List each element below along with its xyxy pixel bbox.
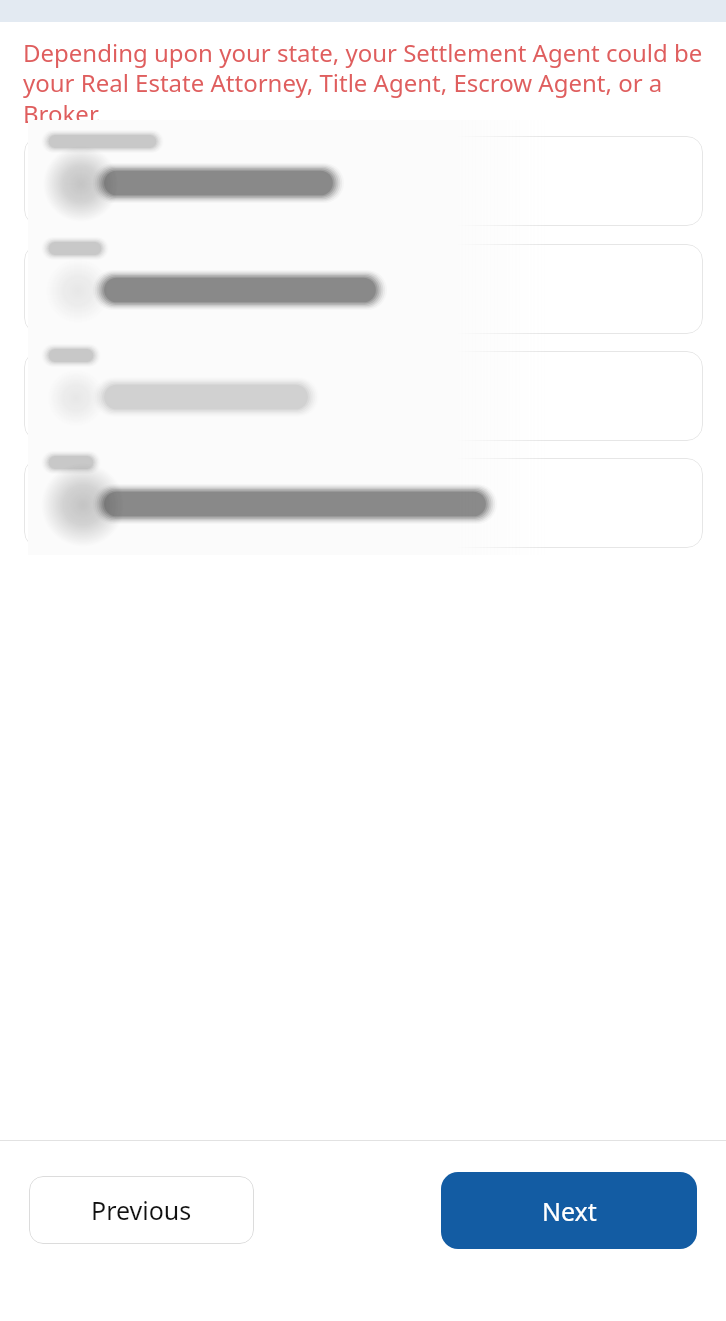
staticText: Depending upon your state, your Settleme… — [23, 36, 707, 130]
button[interactable]: Settlement agent option 4 — [24, 458, 703, 548]
button[interactable]: Previous — [29, 1176, 254, 1244]
button[interactable]: Next — [441, 1172, 697, 1249]
button[interactable]: Settlement agent option 2 — [24, 244, 703, 334]
button[interactable]: Settlement agent option 3 — [24, 351, 703, 441]
staticText: Previous — [91, 1193, 192, 1227]
staticText: Next — [542, 1194, 597, 1228]
button[interactable]: Settlement agent option 1 — [24, 136, 703, 226]
